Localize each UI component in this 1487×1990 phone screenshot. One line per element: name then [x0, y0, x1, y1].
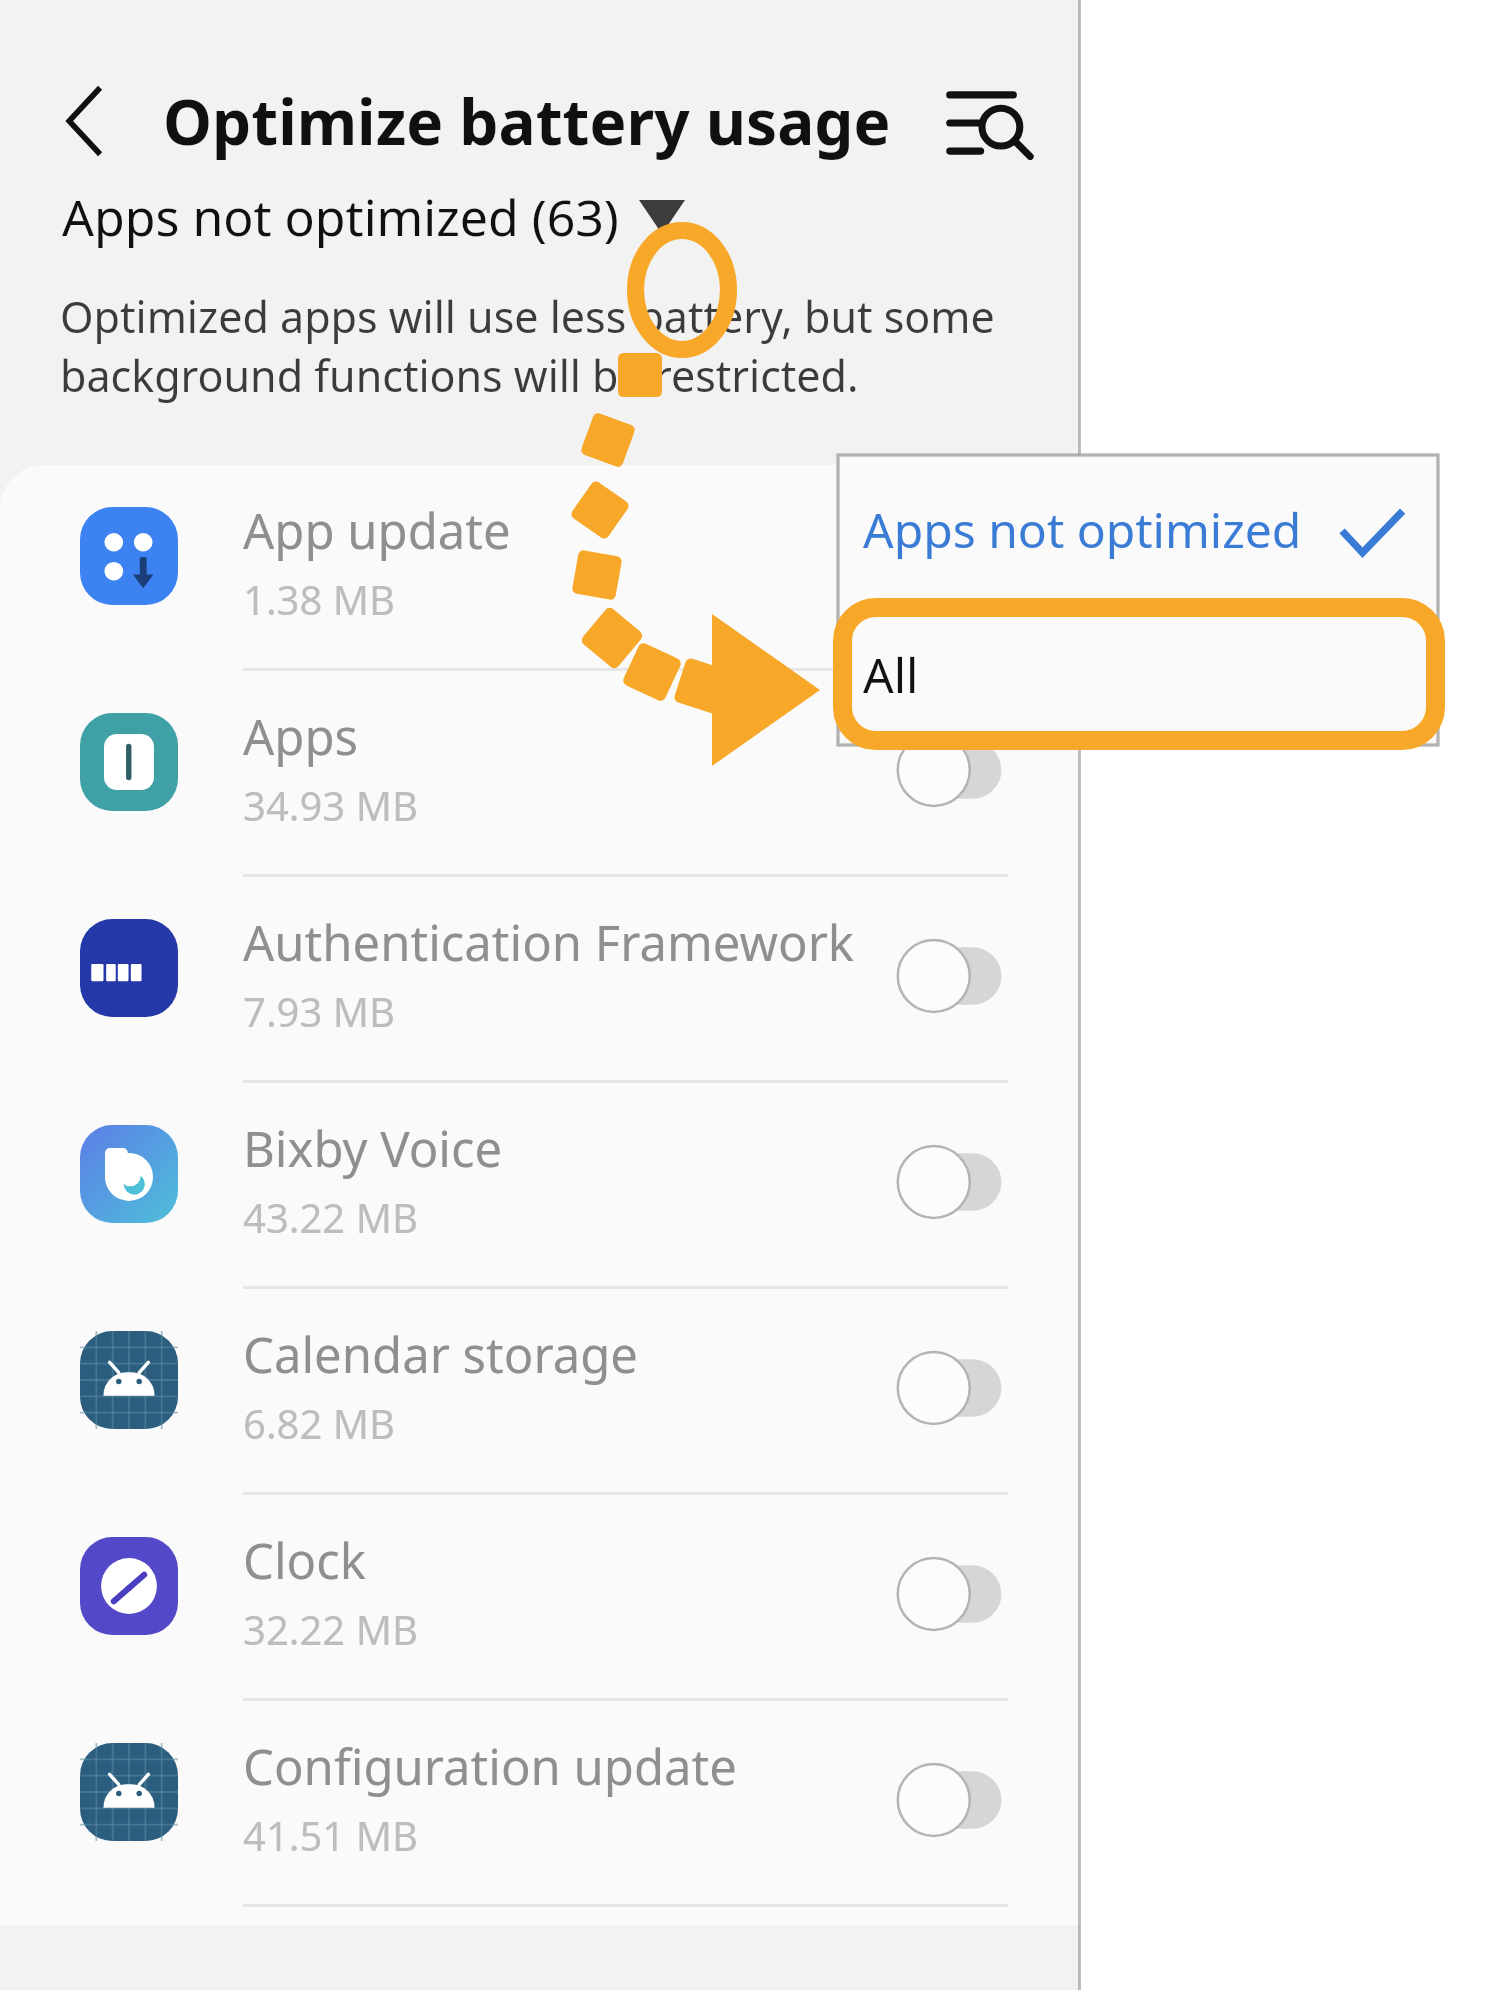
- button[interactable]: Clock: [0, 1495, 1080, 1701]
- staticText: 1.38 MB: [243, 572, 396, 626]
- button[interactable]: Apps: [0, 671, 1080, 877]
- staticText: 34.93 MB: [243, 778, 418, 832]
- staticText: Apps not optimized: [863, 497, 1302, 562]
- staticText: Calendar storage: [243, 1321, 638, 1388]
- staticText: 6.82 MB: [243, 1396, 396, 1450]
- staticText: All: [863, 642, 919, 707]
- button[interactable]: Apps not optimized (63): [62, 183, 691, 251]
- button[interactable]: Apps optimization toggle: [898, 734, 1008, 806]
- button[interactable]: Configuration update optimization toggle: [898, 1764, 1008, 1836]
- staticText: Authentication Framework: [243, 909, 855, 976]
- button[interactable]: Configuration update: [0, 1701, 1080, 1907]
- button[interactable]: Authentication Framework optimization to…: [898, 940, 1008, 1012]
- button[interactable]: Calendar storage: [0, 1289, 1080, 1495]
- staticText: Apps not optimized (63): [62, 183, 619, 251]
- staticText: Configuration update: [243, 1733, 737, 1800]
- button[interactable]: Search: [948, 86, 1034, 160]
- staticText: 41.51 MB: [243, 1808, 418, 1862]
- staticText: App update: [243, 497, 511, 564]
- button[interactable]: Calendar storage optimization toggle: [898, 1352, 1008, 1424]
- button[interactable]: Back: [52, 82, 118, 160]
- staticText: Bixby Voice: [243, 1115, 503, 1182]
- button[interactable]: Apps not optimized: [838, 455, 1438, 600]
- button[interactable]: Clock optimization toggle: [898, 1558, 1008, 1630]
- staticText: 32.22 MB: [243, 1602, 418, 1656]
- staticText: 43.22 MB: [243, 1190, 418, 1244]
- staticText: Clock: [243, 1527, 366, 1594]
- staticText: 7.93 MB: [243, 984, 396, 1038]
- staticText: Optimized apps will use less battery, bu…: [60, 287, 995, 346]
- button[interactable]: App update: [0, 465, 1080, 671]
- button[interactable]: Authentication Framework: [0, 877, 1080, 1083]
- staticText: background functions will be restricted.: [60, 346, 859, 405]
- staticText: Apps: [243, 703, 359, 770]
- button[interactable]: Bixby Voice optimization toggle: [898, 1146, 1008, 1218]
- button[interactable]: Bixby Voice: [0, 1083, 1080, 1289]
- staticText: Optimize battery usage: [163, 79, 891, 163]
- button[interactable]: All: [838, 600, 1438, 745]
